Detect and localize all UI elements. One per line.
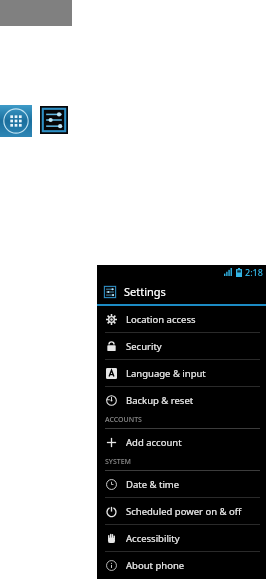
button[interactable]: Accessibility bbox=[97, 525, 266, 551]
staticText: Settings bbox=[124, 284, 166, 299]
staticText: 2:18 bbox=[245, 266, 263, 278]
staticText: Accessibility bbox=[126, 532, 180, 545]
button[interactable]: Date & time bbox=[97, 471, 266, 497]
staticText: SYSTEM bbox=[105, 457, 132, 467]
staticText: ACCOUNTS bbox=[105, 415, 142, 425]
staticText: Add account bbox=[126, 436, 182, 449]
button[interactable]: All apps bbox=[0, 105, 32, 137]
staticText: Security bbox=[126, 340, 162, 353]
button[interactable]: Location access bbox=[97, 306, 266, 332]
button[interactable]: Backup & reset bbox=[97, 387, 266, 413]
button[interactable]: Settings bbox=[40, 106, 68, 134]
staticText: Date & time bbox=[126, 478, 180, 491]
staticText: About phone bbox=[126, 559, 185, 572]
button[interactable]: Language & input bbox=[97, 360, 266, 386]
button[interactable]: Scheduled power on & off bbox=[97, 498, 266, 524]
staticText: Language & input bbox=[126, 367, 206, 380]
staticText: Scheduled power on & off bbox=[126, 505, 242, 518]
staticText: Location access bbox=[126, 313, 196, 326]
button[interactable]: Security bbox=[97, 333, 266, 359]
staticText: Backup & reset bbox=[126, 394, 194, 407]
button[interactable]: Add account bbox=[97, 429, 266, 455]
button[interactable]: About phone bbox=[97, 552, 266, 578]
